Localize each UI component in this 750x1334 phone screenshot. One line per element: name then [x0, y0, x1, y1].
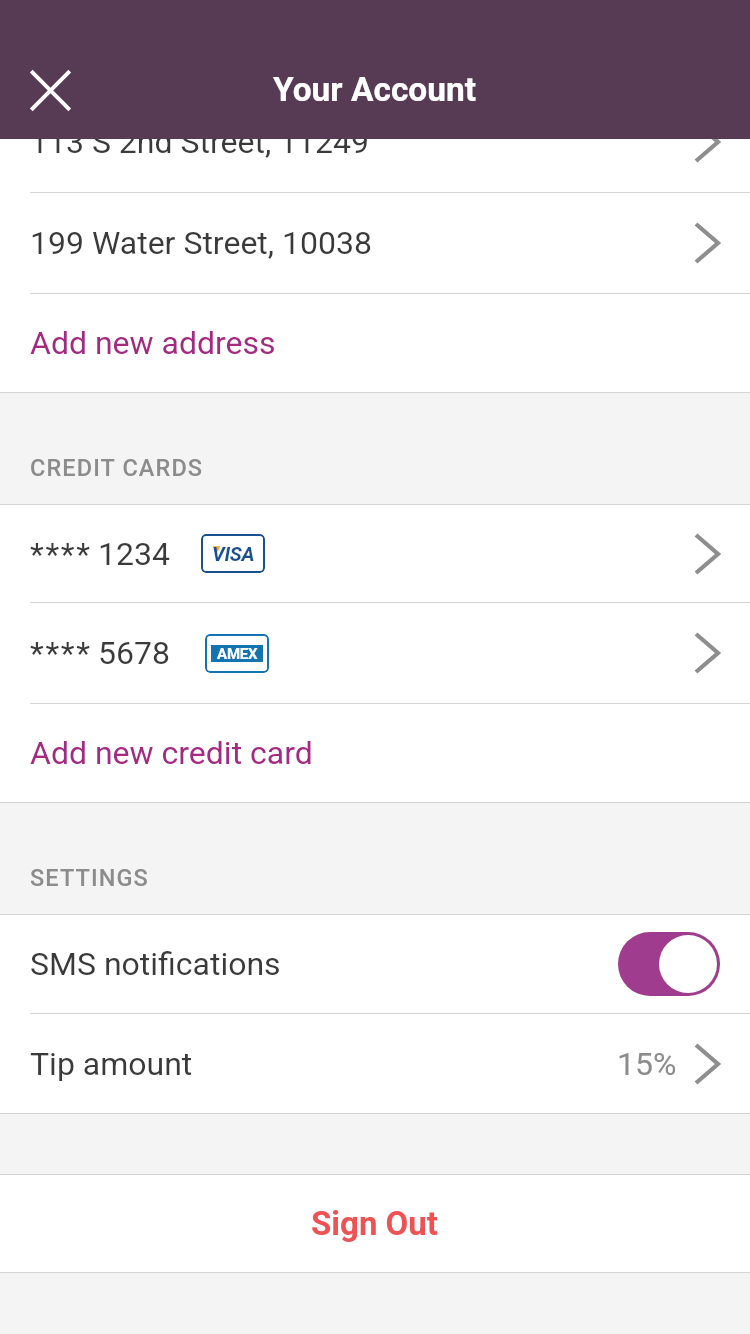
button[interactable]: Sign Out: [0, 1175, 750, 1272]
staticText: Sign Out: [311, 1204, 439, 1243]
staticText: 15%: [617, 1045, 677, 1083]
button[interactable]: Add new credit card: [0, 704, 750, 802]
staticText: 5678: [98, 634, 170, 672]
staticText: AMEX: [217, 645, 258, 662]
button[interactable]: Tip amount: [0, 1014, 750, 1113]
button[interactable]: 199 Water Street, 10038: [0, 193, 750, 293]
staticText: 1234: [98, 535, 170, 573]
button[interactable]: ****: [0, 603, 750, 703]
staticText: Add new credit card: [30, 734, 313, 772]
staticText: VISA: [212, 542, 255, 565]
staticText: Tip amount: [30, 1045, 193, 1083]
staticText: CREDIT CARDS: [30, 454, 204, 482]
button[interactable]: 113 S 2nd Street, 11249: [0, 139, 750, 192]
staticText: 199 Water Street, 10038: [30, 224, 372, 262]
staticText: ****: [30, 634, 92, 672]
staticText: Your Account: [273, 70, 477, 109]
button[interactable]: Close: [16, 56, 84, 124]
staticText: ****: [30, 535, 92, 573]
staticText: Add new address: [30, 324, 276, 362]
button[interactable]: SMS notifications: [618, 932, 720, 996]
button[interactable]: Add new address: [0, 294, 750, 392]
staticText: 113 S 2nd Street, 11249: [30, 139, 370, 161]
button[interactable]: ****: [0, 505, 750, 602]
staticText: SETTINGS: [30, 864, 149, 892]
staticText: SMS notifications: [30, 945, 281, 983]
button[interactable]: SMS notifications: [0, 915, 750, 1013]
